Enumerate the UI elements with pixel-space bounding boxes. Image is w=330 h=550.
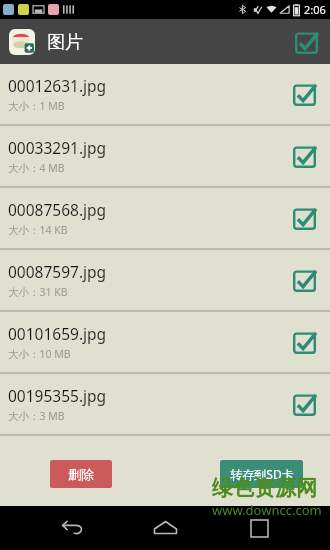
staticText: 绿色资源网	[212, 475, 317, 501]
button[interactable]: 00087568.jpg	[0, 188, 330, 250]
button[interactable]: Recent apps	[237, 506, 281, 550]
staticText: 00087597.jpg	[8, 261, 107, 282]
staticText: 00101659.jpg	[8, 323, 107, 344]
button[interactable]: Select all	[289, 25, 323, 59]
staticText: 00033291.jpg	[8, 137, 107, 158]
button[interactable]: 转存到SD卡	[220, 460, 303, 488]
staticText: 大小：3 MB	[8, 409, 65, 423]
staticText: 大小：4 MB	[8, 161, 65, 175]
staticText: 转存到SD卡	[230, 466, 294, 482]
staticText: 大小：10 MB	[8, 347, 71, 361]
staticText: 00087568.jpg	[8, 199, 107, 220]
staticText: 图片	[47, 31, 83, 54]
staticText: 2:06	[304, 2, 326, 17]
staticText: 大小：14 KB	[8, 223, 68, 237]
button[interactable]: 删除	[50, 460, 112, 488]
staticText: 00195355.jpg	[8, 385, 107, 406]
button[interactable]: 00101659.jpg	[0, 312, 330, 374]
staticText: 大小：31 KB	[8, 285, 68, 299]
staticText: 删除	[68, 466, 94, 482]
button[interactable]: 00087597.jpg	[0, 250, 330, 312]
staticText: 大小：1 MB	[8, 99, 65, 113]
staticText: 00012631.jpg	[8, 75, 107, 96]
button[interactable]: 00012631.jpg	[0, 64, 330, 126]
button[interactable]: 00195355.jpg	[0, 374, 330, 436]
button[interactable]: App icon	[9, 29, 35, 55]
button[interactable]: Back	[50, 506, 94, 550]
button[interactable]: 00033291.jpg	[0, 126, 330, 188]
button[interactable]: Home	[143, 506, 187, 550]
staticText: www.downcc.com	[212, 501, 322, 519]
